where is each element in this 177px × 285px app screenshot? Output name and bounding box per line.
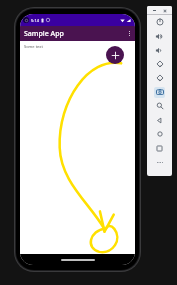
button[interactable]: Close [161,7,169,14]
button[interactable]: Rotate left [147,57,172,71]
button[interactable]: Rotate right [147,71,172,85]
button[interactable]: Volume down [147,43,172,57]
button[interactable]: More [147,155,172,169]
button[interactable]: Home [147,127,172,141]
button[interactable]: Minimize [150,7,158,14]
staticText: 5:14 [31,18,39,23]
button[interactable]: Home gesture [61,259,95,261]
button[interactable]: Power [147,15,172,29]
button[interactable]: More options [124,26,135,41]
button[interactable]: Take screenshot [147,85,172,99]
button[interactable]: Volume up [147,29,172,43]
button[interactable]: Overview [147,141,172,155]
button[interactable]: Add [106,46,124,64]
button[interactable]: Back [147,113,172,127]
staticText: Sample App [24,29,64,39]
button[interactable]: Zoom [147,99,172,113]
staticText: Some text [24,44,43,49]
